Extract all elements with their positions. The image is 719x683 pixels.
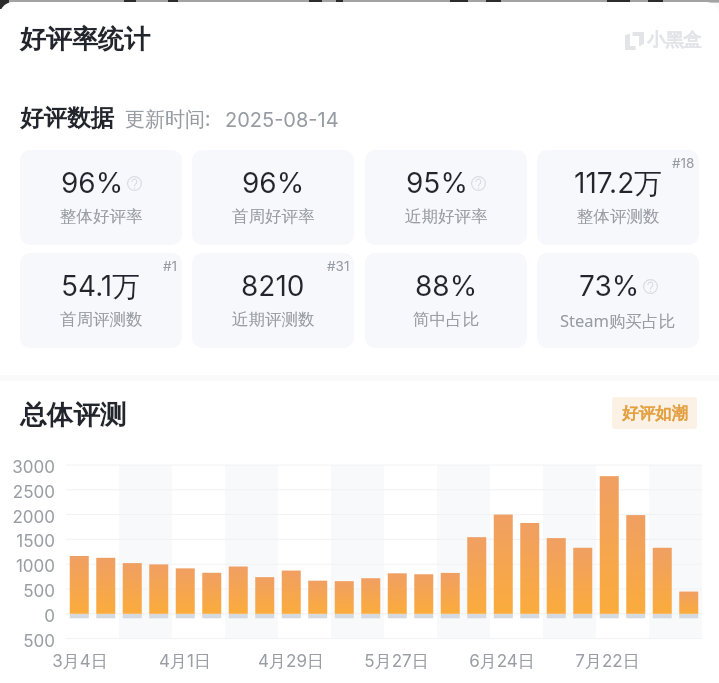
staticText: 好评数据 <box>20 103 114 133</box>
staticText: 总体评测 <box>20 398 126 431</box>
staticText: 7月22日 <box>575 651 640 673</box>
staticText: 0 <box>44 606 55 627</box>
staticText: 3000 <box>12 457 55 478</box>
staticText: #18 <box>672 155 695 171</box>
staticText: #1 <box>163 258 178 274</box>
staticText: 8210 <box>241 269 305 303</box>
staticText: 首周评测数 <box>60 309 143 330</box>
staticText: 6月24日 <box>469 651 535 673</box>
button[interactable]: 88% <box>365 253 527 348</box>
button[interactable]: #1 <box>20 253 182 348</box>
button[interactable]: #31 <box>192 253 354 348</box>
button[interactable]: 96% <box>192 150 354 245</box>
staticText: 73% <box>579 269 640 303</box>
button[interactable]: 73% <box>537 253 699 348</box>
staticText: 96% <box>61 166 124 200</box>
button[interactable]: 95% <box>365 150 527 245</box>
staticText: 2500 <box>12 482 55 503</box>
staticText: #31 <box>327 258 350 274</box>
staticText: 4月29日 <box>258 651 324 673</box>
staticText: Steam购买占比 <box>560 309 676 332</box>
button[interactable]: 96% <box>20 150 182 245</box>
staticText: 整体评测数 <box>577 206 660 227</box>
button[interactable]: 小黑盒 <box>625 29 701 52</box>
staticText: 54.1万 <box>61 269 141 304</box>
staticText: 2000 <box>12 507 55 528</box>
staticText: 小黑盒 <box>647 29 701 52</box>
staticText: 首周好评率 <box>232 206 315 227</box>
staticText: 更新时间: <box>125 105 211 132</box>
staticText: 2025-08-14 <box>225 108 339 132</box>
staticText: 好评如潮 <box>622 403 688 424</box>
staticText: 1000 <box>15 556 55 577</box>
button[interactable]: #18 <box>537 150 699 245</box>
staticText: 1500 <box>16 531 55 552</box>
staticText: 88% <box>415 269 478 303</box>
staticText: 简中占比 <box>413 309 479 330</box>
button[interactable]: 好评如潮 <box>612 397 697 429</box>
staticText: 好评率统计 <box>20 23 150 56</box>
staticText: 近期评测数 <box>232 309 315 330</box>
staticText: 96% <box>242 166 305 200</box>
staticText: 500 <box>23 581 55 602</box>
staticText: 近期好评率 <box>405 206 488 227</box>
staticText: 117.2万 <box>574 166 663 201</box>
staticText: 4月1日 <box>159 651 211 673</box>
staticText: 整体好评率 <box>60 206 143 227</box>
staticText: 95% <box>406 166 468 200</box>
staticText: 5月27日 <box>364 651 429 673</box>
staticText: 3月4日 <box>52 651 108 673</box>
staticText: 500 <box>23 631 55 652</box>
